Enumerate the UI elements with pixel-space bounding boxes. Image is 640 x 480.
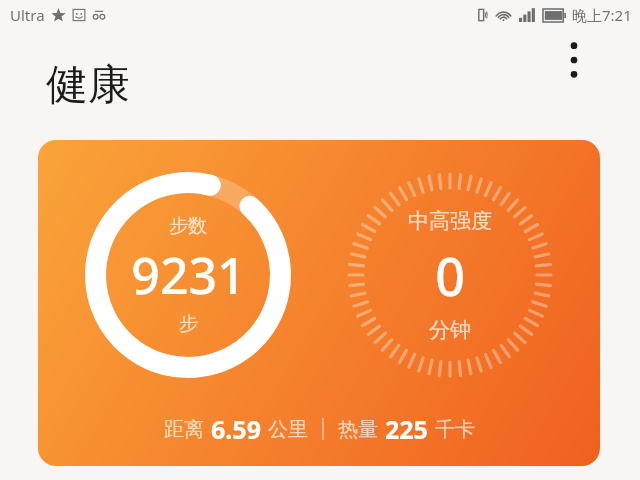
staticText: 千卡	[435, 417, 475, 442]
staticText: 步	[179, 312, 198, 336]
staticText: 中高强度	[408, 208, 492, 234]
button[interactable]: 步数	[38, 140, 600, 466]
staticText: 225	[385, 412, 428, 446]
staticText: 距离	[164, 417, 204, 442]
button[interactable]: More options	[552, 38, 596, 82]
staticText: 公里	[268, 417, 308, 442]
staticText: 6.59	[211, 412, 261, 446]
staticText: 健康	[46, 59, 130, 112]
staticText: Ultra	[10, 5, 45, 25]
staticText: 步数	[169, 214, 207, 238]
staticText: 分钟	[429, 317, 471, 343]
staticText: 0	[435, 240, 465, 311]
staticText: 热量	[338, 417, 378, 442]
staticText: 9231	[131, 241, 246, 309]
staticText: 晚上7:21	[572, 5, 632, 25]
